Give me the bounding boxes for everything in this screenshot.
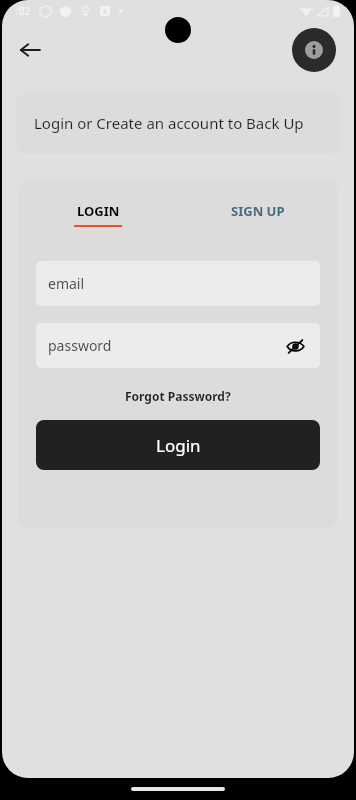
button[interactable]: Information	[292, 28, 336, 72]
staticText: SIGN UP	[231, 202, 285, 220]
staticText: Login or Create an account to Back Up	[34, 113, 304, 133]
button[interactable]: Login	[36, 420, 320, 470]
staticText: Forgot Password?	[125, 388, 231, 404]
staticText: Login	[156, 434, 201, 457]
staticText: email	[48, 274, 85, 293]
staticText: :02	[16, 4, 31, 18]
button[interactable]: SIGN UP	[221, 198, 295, 224]
button[interactable]: Login or Create an account to Back Up	[16, 92, 340, 154]
button[interactable]: Forgot Password?	[121, 384, 235, 408]
staticText: password	[48, 336, 112, 355]
staticText: LOGIN	[77, 202, 120, 220]
button[interactable]: Show password	[280, 331, 310, 361]
button[interactable]: LOGIN	[64, 198, 132, 231]
button[interactable]: email	[36, 261, 320, 306]
button[interactable]: password	[36, 323, 320, 368]
button[interactable]: Back	[10, 30, 50, 70]
